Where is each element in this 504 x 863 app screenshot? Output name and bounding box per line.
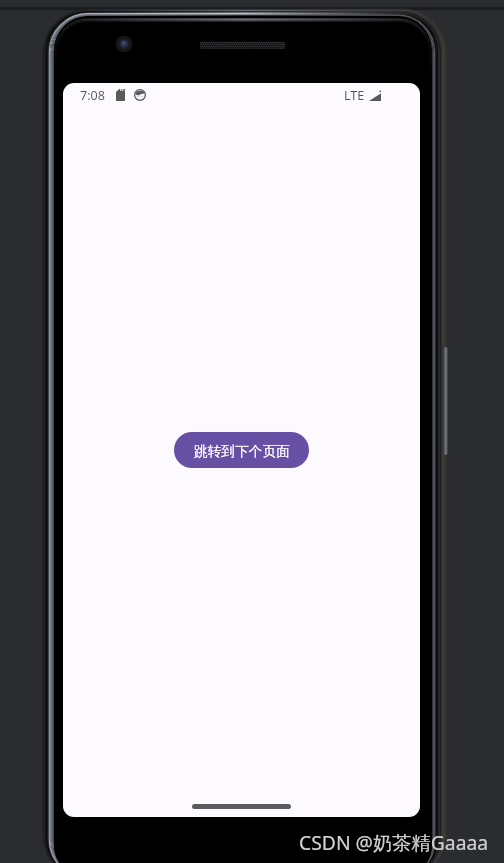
staticText: 7:08	[80, 87, 105, 103]
staticText: CSDN @奶茶精Gaaaa	[299, 829, 489, 855]
staticText: LTE	[344, 87, 365, 103]
button[interactable]: 跳转到下个页面	[174, 432, 309, 468]
staticText: 跳转到下个页面	[194, 443, 290, 460]
